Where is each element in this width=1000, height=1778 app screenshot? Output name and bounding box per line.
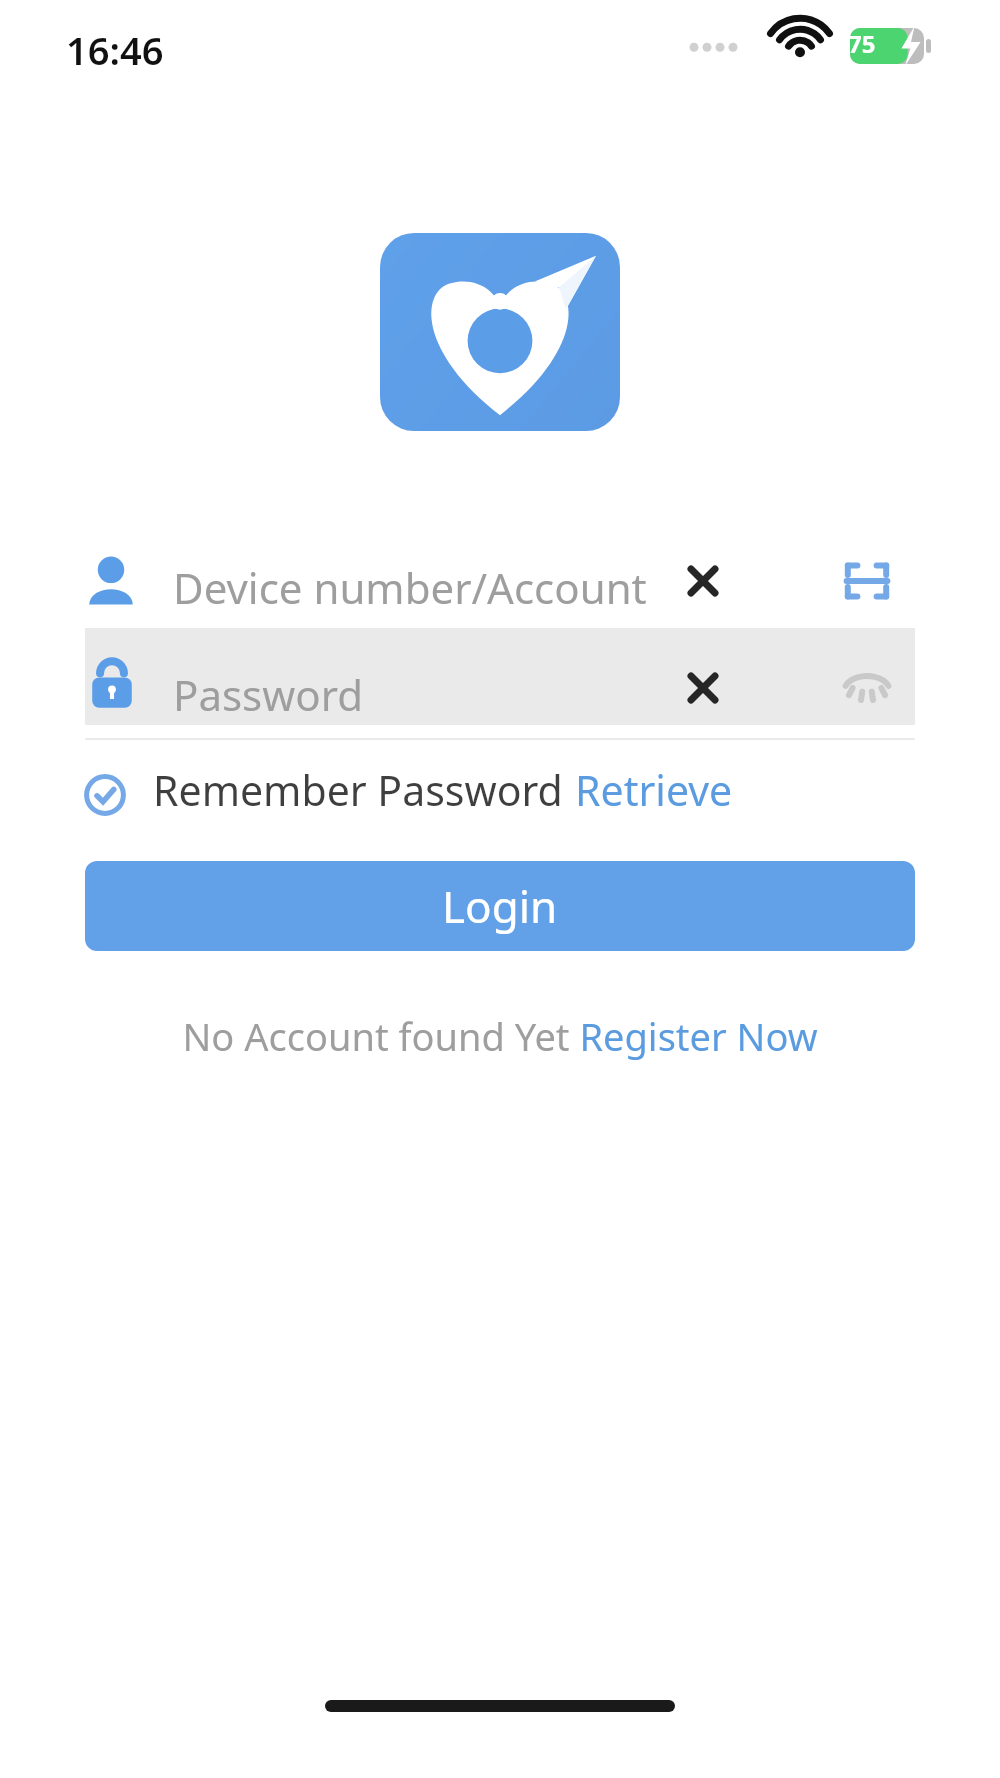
staticText: 16:46 — [66, 24, 164, 76]
staticText: Login — [442, 876, 558, 936]
staticText: Device number/Account — [173, 559, 647, 616]
button[interactable]: No Account found Yet Register Now — [150, 1005, 850, 1067]
staticText: 75 — [848, 27, 876, 60]
button[interactable]: Login — [85, 861, 915, 951]
button[interactable]: Retrieve Password — [575, 762, 915, 826]
button[interactable]: Remember Password — [85, 762, 535, 826]
button[interactable]: Password — [85, 640, 915, 737]
staticText: Retrieve Password — [575, 762, 915, 826]
staticText: Remember Password — [153, 762, 563, 818]
button[interactable]: Clear password — [673, 658, 733, 718]
button[interactable]: Show password — [837, 658, 897, 718]
button[interactable]: Device number/Account — [85, 533, 915, 630]
button[interactable]: Scan QR code — [837, 551, 897, 611]
staticText: Password — [173, 666, 363, 723]
button[interactable]: Clear account — [673, 551, 733, 611]
staticText: No Account found Yet Register Now — [182, 1010, 818, 1062]
